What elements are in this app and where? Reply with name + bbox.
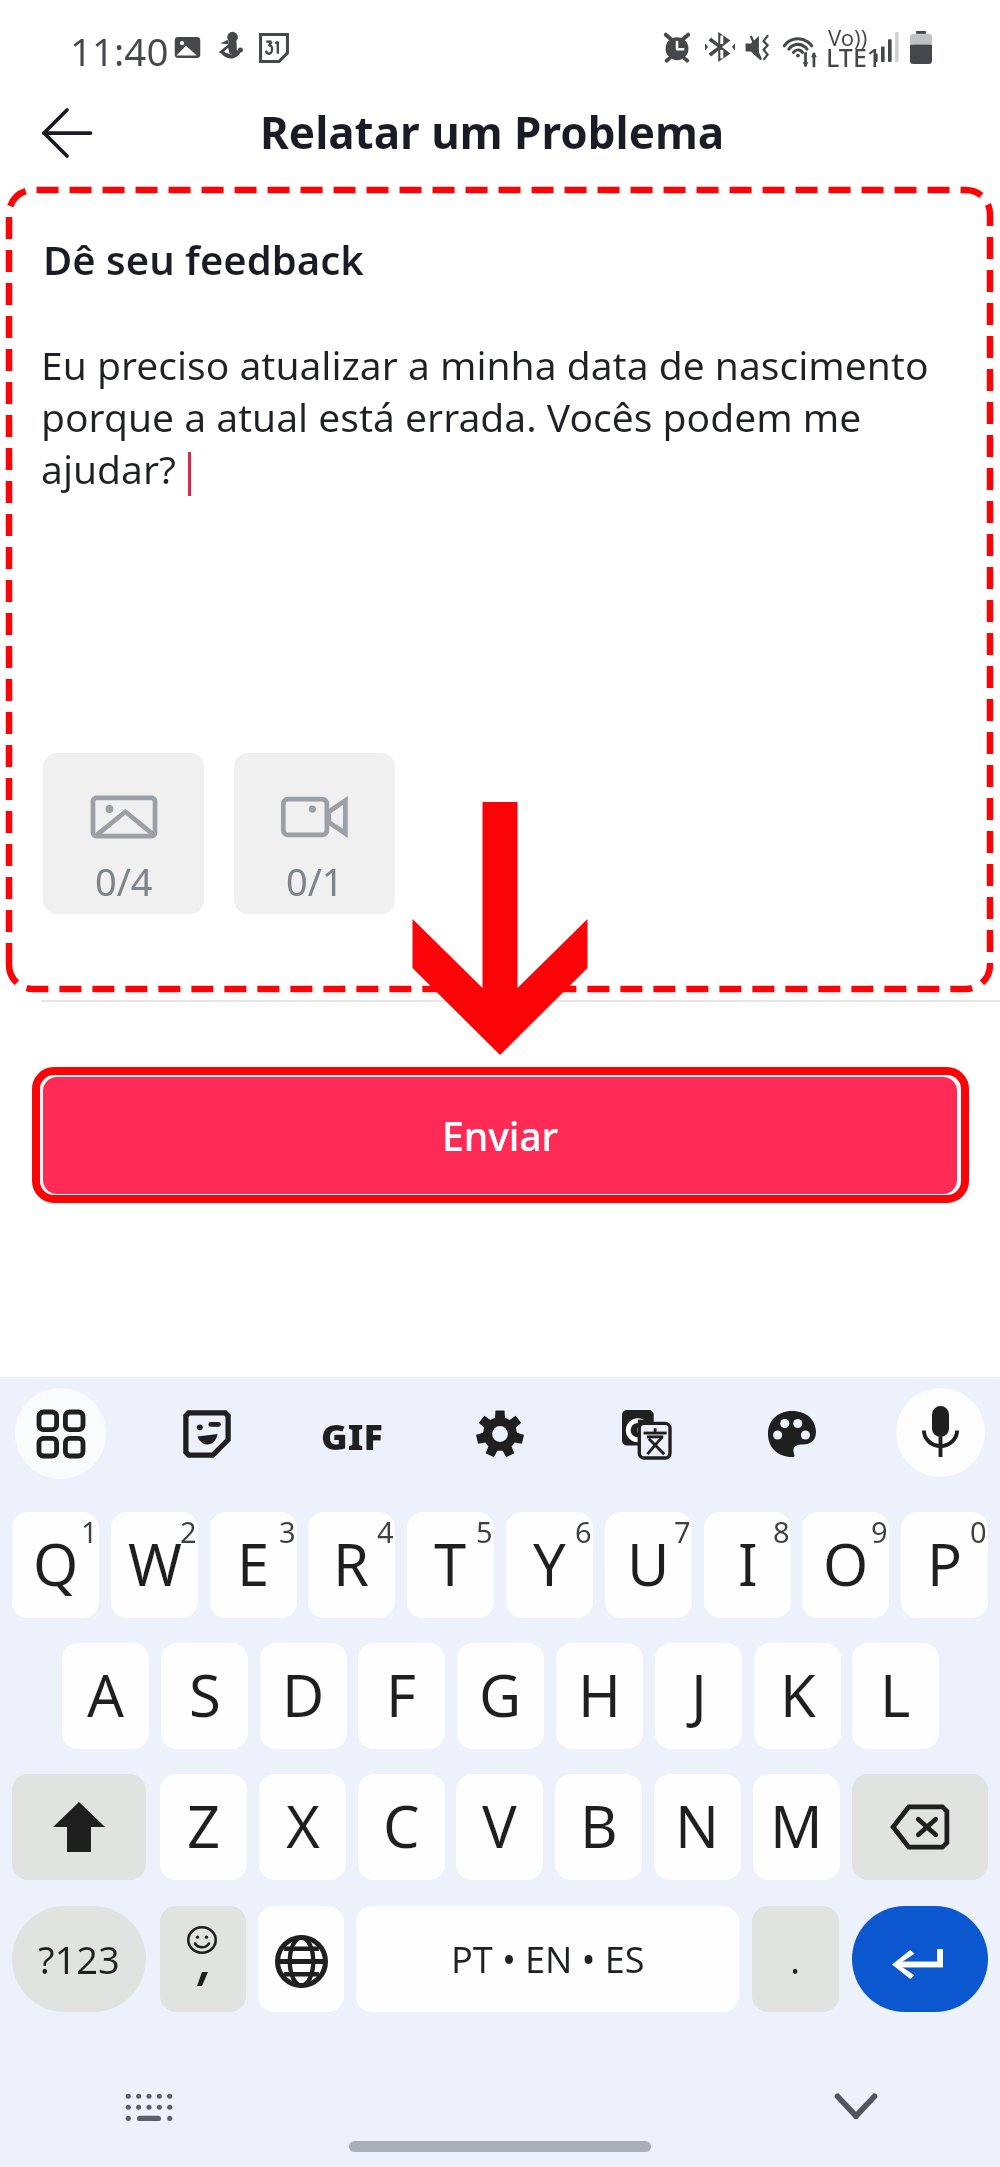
button[interactable]: B xyxy=(555,1774,642,1880)
staticText: X xyxy=(286,1786,320,1865)
button[interactable]: Stickers xyxy=(161,1388,252,1479)
staticText: 0/1 xyxy=(286,855,344,907)
button[interactable]: Q xyxy=(12,1512,99,1618)
staticText: W xyxy=(128,1524,182,1603)
staticText: K xyxy=(780,1655,816,1734)
staticText: GIF xyxy=(321,1412,383,1456)
button[interactable]: T xyxy=(407,1512,494,1618)
staticText: 3 xyxy=(279,1512,296,1551)
staticText: N xyxy=(675,1786,720,1865)
staticText: 0 xyxy=(970,1512,987,1551)
button[interactable]: Hide keyboard xyxy=(835,2094,877,2118)
button[interactable]: PT • EN • ES xyxy=(356,1906,739,2012)
staticText: P xyxy=(927,1524,963,1603)
button[interactable]: Settings xyxy=(454,1388,545,1479)
button[interactable]: Apps xyxy=(15,1388,106,1479)
button[interactable]: Translate xyxy=(600,1388,691,1479)
staticText: 0/4 xyxy=(95,855,153,907)
staticText: 5 xyxy=(476,1512,493,1551)
button[interactable]: X xyxy=(259,1774,346,1880)
button[interactable]: P xyxy=(901,1512,988,1618)
button[interactable]: 0/1 xyxy=(234,753,395,914)
staticText: 11:40 xyxy=(70,25,169,77)
staticText: Y xyxy=(533,1524,566,1603)
button[interactable]: K xyxy=(754,1643,841,1749)
staticText: PT • EN • ES xyxy=(451,1935,645,1984)
button[interactable]: Emoji xyxy=(160,1906,246,2012)
button[interactable]: Shift xyxy=(12,1774,146,1880)
staticText: 7 xyxy=(674,1512,691,1551)
button[interactable]: Theme xyxy=(746,1388,837,1479)
button[interactable]: A xyxy=(62,1643,149,1749)
staticText: H xyxy=(578,1655,621,1734)
staticText: A xyxy=(87,1655,125,1734)
staticText: 2 xyxy=(180,1512,197,1551)
staticText: E xyxy=(237,1524,270,1603)
button[interactable]: M xyxy=(753,1774,840,1880)
button[interactable]: . xyxy=(752,1906,839,2012)
staticText: R xyxy=(333,1524,370,1603)
staticText: 4 xyxy=(377,1512,394,1551)
staticText: G xyxy=(479,1655,522,1734)
button[interactable]: Enter xyxy=(852,1906,988,2012)
button[interactable]: U xyxy=(605,1512,692,1618)
button[interactable]: 0/4 xyxy=(43,753,204,914)
staticText: Dê seu feedback xyxy=(43,232,364,286)
button[interactable]: Back xyxy=(26,93,106,173)
button[interactable]: D xyxy=(260,1643,347,1749)
staticText: 1 xyxy=(81,1512,98,1551)
staticText: C xyxy=(383,1786,420,1865)
button[interactable]: GIF xyxy=(314,1412,390,1456)
button[interactable]: J xyxy=(655,1643,742,1749)
button[interactable]: Change language xyxy=(258,1906,344,2012)
button[interactable]: W xyxy=(111,1512,198,1618)
staticText: 8 xyxy=(773,1512,790,1551)
staticText: 6 xyxy=(575,1512,592,1551)
staticText: Z xyxy=(187,1786,221,1865)
button[interactable]: Z xyxy=(160,1774,247,1880)
button[interactable]: E xyxy=(210,1512,297,1618)
staticText: T xyxy=(434,1524,467,1603)
staticText: LTE1 xyxy=(826,40,882,74)
button[interactable]: Voice input xyxy=(896,1388,985,1477)
button[interactable]: H xyxy=(556,1643,643,1749)
button[interactable]: G xyxy=(457,1643,544,1749)
button[interactable]: Y xyxy=(506,1512,593,1618)
staticText: B xyxy=(580,1786,618,1865)
staticText: O xyxy=(823,1524,869,1603)
button[interactable]: ?123 xyxy=(12,1906,146,2012)
button[interactable]: L xyxy=(852,1643,939,1749)
button[interactable]: F xyxy=(358,1643,445,1749)
button[interactable]: Enviar xyxy=(43,1077,957,1194)
staticText: V xyxy=(482,1786,517,1865)
button[interactable]: Backspace xyxy=(852,1774,988,1880)
staticText: S xyxy=(189,1655,221,1734)
button[interactable]: Keyboard layout xyxy=(126,2093,172,2120)
staticText: F xyxy=(386,1655,417,1734)
staticText: U xyxy=(627,1524,670,1603)
staticText: I xyxy=(738,1524,758,1603)
button[interactable]: I xyxy=(704,1512,791,1618)
button[interactable]: N xyxy=(654,1774,741,1880)
button[interactable]: R xyxy=(308,1512,395,1618)
button[interactable]: C xyxy=(358,1774,445,1880)
staticText: L xyxy=(880,1655,911,1734)
staticText: J xyxy=(691,1655,707,1734)
staticText: Q xyxy=(33,1524,79,1603)
staticText: 9 xyxy=(871,1512,888,1551)
staticText: Vo)) xyxy=(828,22,868,52)
staticText: D xyxy=(282,1655,325,1734)
button[interactable]: S xyxy=(161,1643,248,1749)
staticText: Eu preciso atualizar a minha data de nas… xyxy=(41,338,929,495)
button[interactable]: O xyxy=(802,1512,889,1618)
staticText: Relatar um Problema xyxy=(260,102,725,162)
staticText: Enviar xyxy=(442,1109,559,1162)
staticText: . xyxy=(790,1933,801,1985)
button[interactable]: V xyxy=(456,1774,543,1880)
staticText: ?123 xyxy=(38,1933,120,1985)
staticText: M xyxy=(770,1786,823,1865)
